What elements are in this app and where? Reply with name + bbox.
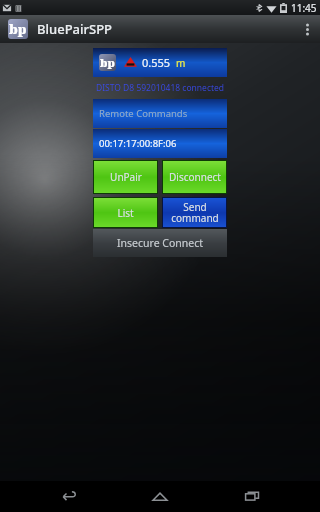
staticText: bp bbox=[9, 20, 27, 38]
staticText: m bbox=[176, 56, 186, 70]
staticText: DISTO D8 592010418 connected bbox=[93, 82, 227, 94]
button[interactable]: More options bbox=[294, 15, 320, 43]
staticText: BluePairSPP bbox=[37, 20, 113, 38]
button[interactable]: Remote Commands bbox=[93, 99, 227, 128]
button[interactable]: Insecure Connect bbox=[93, 229, 227, 257]
staticText: UnPair bbox=[110, 170, 142, 184]
button[interactable]: Disconnect bbox=[162, 160, 227, 194]
staticText: 0.555 bbox=[142, 55, 171, 70]
staticText: 11:45 bbox=[291, 1, 317, 15]
staticText: List bbox=[117, 206, 134, 220]
staticText: 00:17:17:00:8F:06 bbox=[99, 137, 177, 150]
staticText: Insecure Connect bbox=[117, 236, 204, 250]
staticText: Send command bbox=[171, 200, 219, 225]
button[interactable]: Send command bbox=[162, 197, 227, 228]
staticText: bp bbox=[100, 55, 115, 70]
button[interactable]: Back bbox=[46, 481, 92, 512]
button[interactable]: List bbox=[93, 197, 158, 228]
staticText: Disconnect bbox=[169, 170, 221, 184]
button[interactable]: Recent apps bbox=[229, 481, 275, 512]
button[interactable]: Home bbox=[137, 481, 183, 512]
staticText: Remote Commands bbox=[99, 107, 188, 120]
button[interactable]: bp bbox=[93, 48, 227, 77]
button[interactable]: 00:17:17:00:8F:06 bbox=[93, 129, 227, 158]
button[interactable]: UnPair bbox=[93, 160, 158, 194]
